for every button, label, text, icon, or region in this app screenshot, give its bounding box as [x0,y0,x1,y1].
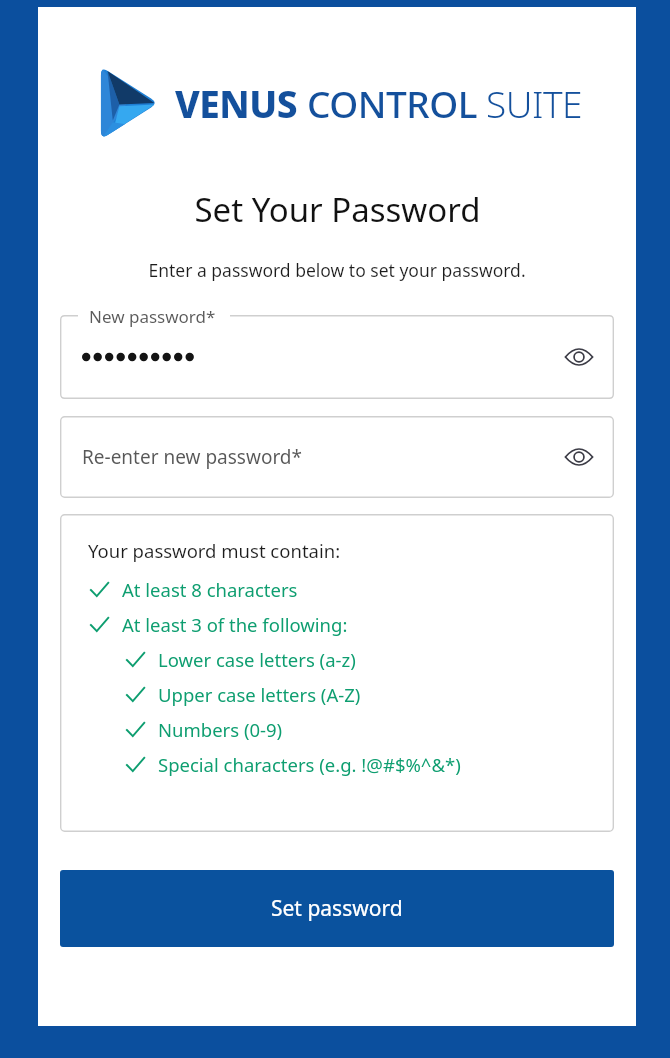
button[interactable]: Show password [562,440,596,474]
staticText: Upper case letters (A-Z) [158,682,361,707]
staticText: Enter a password below to set your passw… [148,258,526,282]
button[interactable]: Show password [562,340,596,374]
staticText: At least 3 of the following: [122,612,348,637]
button[interactable]: Set password [60,870,614,947]
staticText: New password* [89,305,216,328]
button[interactable]: Re-enter new password* [60,416,614,498]
staticText: Special characters (e.g. !@#$%^&*) [158,752,461,777]
staticText: Your password must contain: [88,538,341,563]
staticText: VENUS [175,78,298,128]
staticText: Set Your Password [194,187,481,232]
staticText: Numbers (0-9) [158,717,283,742]
staticText: Lower case letters (a-z) [158,647,356,672]
staticText: At least 8 characters [122,577,298,602]
staticText: Re-enter new password* [82,444,562,470]
staticText: CONTROL [307,78,477,128]
button[interactable]: Show password [60,315,614,399]
staticText: SUITE [486,78,582,128]
staticText: Set password [271,894,403,923]
